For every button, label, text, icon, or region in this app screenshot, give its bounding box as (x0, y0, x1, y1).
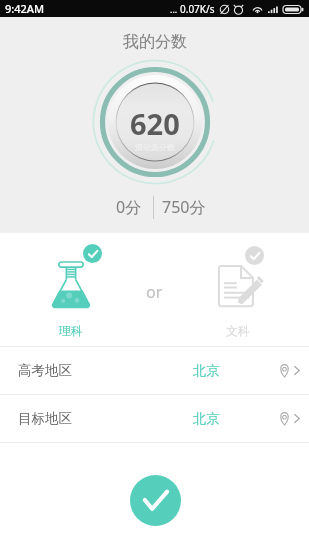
button[interactable]: 理科 (18, 233, 124, 346)
button[interactable]: Confirm (130, 475, 181, 526)
staticText: 高考地区 (18, 362, 72, 379)
staticText: 我的分数 (123, 32, 187, 52)
staticText: 620 (130, 104, 180, 143)
button[interactable]: 目标地区 (0, 395, 309, 442)
staticText: 北京 (193, 410, 220, 427)
staticText: 750分 (162, 196, 206, 218)
staticText: or (146, 281, 163, 303)
staticText: 目标地区 (18, 410, 72, 427)
button[interactable]: 高考地区 (0, 347, 309, 394)
staticText: 0.07K/s (180, 2, 215, 16)
staticText: 0分 (116, 196, 142, 218)
staticText: 滑动选分数 (135, 142, 175, 152)
staticText: 9:42AM (5, 1, 45, 16)
staticText: 理科 (59, 323, 83, 338)
button[interactable]: 文科 (185, 233, 291, 346)
staticText: ... (170, 3, 178, 15)
staticText: 文科 (226, 323, 250, 338)
staticText: 北京 (193, 362, 220, 379)
